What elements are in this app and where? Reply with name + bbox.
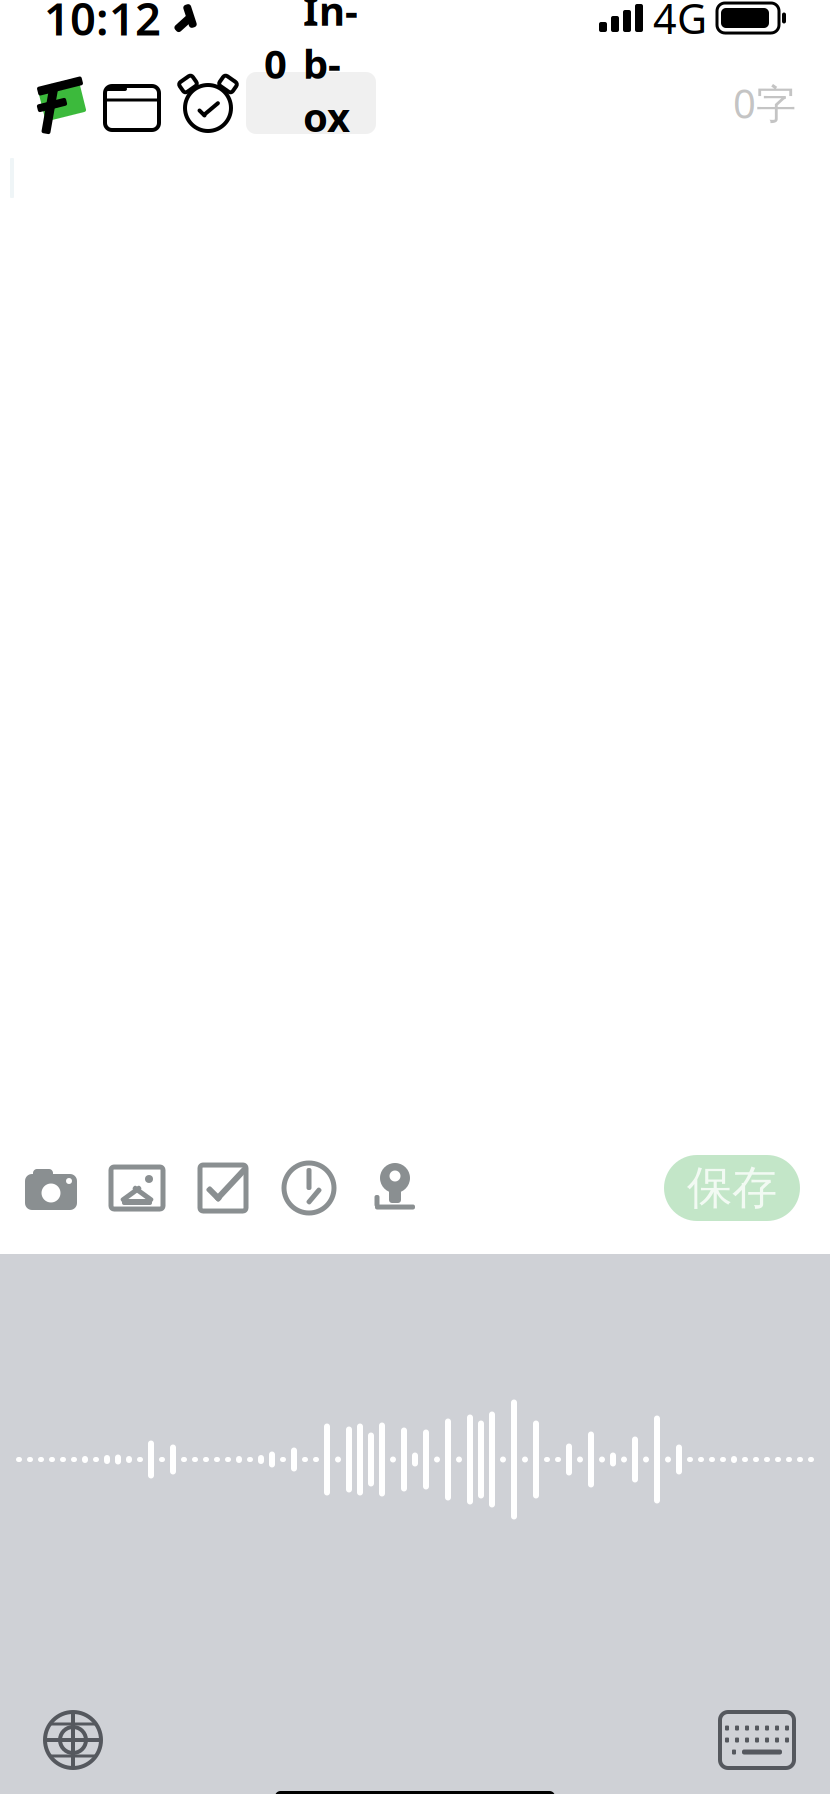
button[interactable]: Time	[266, 1145, 352, 1231]
button[interactable]: App menu	[18, 65, 94, 141]
button[interactable]: Camera	[8, 1145, 94, 1231]
staticText: 保存	[687, 1160, 777, 1216]
button[interactable]: 保存	[664, 1155, 800, 1221]
button[interactable]: Checklist	[180, 1145, 266, 1231]
button[interactable]: Show keyboard	[712, 1695, 802, 1785]
staticText: Inbox	[303, 0, 358, 143]
button[interactable]: 0	[246, 72, 376, 134]
button[interactable]: Reminder	[170, 65, 246, 141]
staticText: 0	[264, 37, 287, 90]
button[interactable]: Change keyboard language	[28, 1695, 118, 1785]
button[interactable]: Photos	[94, 1145, 180, 1231]
button[interactable]: Location	[352, 1145, 438, 1231]
button[interactable]: Folder	[94, 65, 170, 141]
staticText: 0字	[733, 76, 796, 129]
staticText: 4G	[653, 0, 707, 45]
staticText: 10:12	[44, 0, 161, 48]
